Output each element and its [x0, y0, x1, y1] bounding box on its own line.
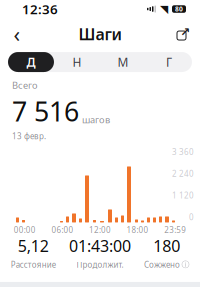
staticText: Шаги [78, 23, 121, 45]
button[interactable]: 180 [133, 235, 200, 270]
staticText: 80 [175, 5, 183, 13]
button[interactable]: 5,12 [0, 235, 67, 270]
staticText: 13 февр. [12, 131, 46, 141]
button[interactable]: Г [146, 52, 192, 72]
button[interactable]: Н [54, 52, 100, 72]
staticText: 18:00 [127, 224, 149, 235]
staticText: Всего [12, 79, 38, 91]
staticText: Н [72, 54, 81, 70]
staticText: ‹ [13, 20, 20, 48]
staticText: Д [26, 54, 35, 70]
staticText: 12:36 [22, 0, 58, 18]
staticText: 23:59 [164, 224, 186, 235]
staticText: 06:00 [51, 224, 73, 235]
staticText: 00:00 [14, 224, 36, 235]
button[interactable]: Д [8, 52, 54, 72]
staticText: Расстояние [11, 259, 56, 270]
staticText: Сожжено [144, 259, 180, 270]
staticText: 1 120 [172, 190, 194, 201]
button[interactable]: М [100, 52, 146, 72]
staticText: 180 [153, 235, 180, 256]
staticText: 7 516 [12, 93, 79, 129]
button[interactable]: 01:43:00 [67, 235, 133, 270]
staticText: шагов [82, 113, 110, 126]
staticText: 01:43:00 [69, 235, 131, 256]
staticText: 2 240 [172, 168, 194, 179]
button[interactable]: Share [170, 21, 196, 47]
staticText: ⓘ [181, 260, 189, 269]
staticText: 12:00 [89, 224, 111, 235]
staticText: Г [166, 54, 172, 70]
staticText: 0 [189, 212, 194, 222]
staticText: 3 360 [172, 146, 194, 157]
staticText: М [117, 54, 128, 70]
staticText: ◥ [160, 3, 168, 15]
button[interactable]: Back [4, 21, 30, 47]
staticText: 5,12 [18, 235, 49, 256]
staticText: Продолжит. [76, 259, 123, 270]
staticText: ↗ [180, 25, 190, 39]
